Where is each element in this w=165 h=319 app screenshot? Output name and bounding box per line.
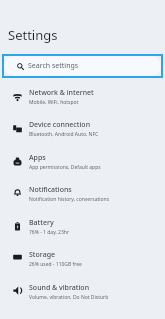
staticText: Battery	[29, 218, 54, 228]
button[interactable]: Sound & vibration	[0, 276, 165, 308]
staticText: Mobile, WiFi, hotspot	[29, 99, 79, 106]
staticText: Device connection	[29, 120, 91, 130]
button[interactable]: Network & internet	[0, 81, 165, 113]
button[interactable]: Notifications	[0, 178, 165, 210]
staticText: Volume, vibration, Do Not Disturb	[29, 294, 109, 301]
staticText: Bluetooth, Android Auto, NFC	[29, 131, 99, 138]
staticText: App permissions, Default apps	[29, 164, 101, 171]
button[interactable]: Battery	[0, 211, 165, 243]
button[interactable]: Device connection	[0, 113, 165, 145]
button[interactable]: Search settings	[4, 56, 161, 76]
staticText: 76% - 1 day, 23hr	[29, 229, 69, 236]
staticText: Sound & vibration	[29, 283, 90, 293]
staticText: Storage	[29, 250, 55, 260]
staticText: Notification history, conversations	[29, 196, 110, 203]
staticText: Search settings	[28, 61, 79, 71]
staticText: 26% used - 110GB free	[29, 261, 82, 268]
staticText: Notifications	[29, 185, 72, 195]
staticText: Settings	[8, 26, 58, 44]
staticText: Apps	[29, 153, 46, 163]
button[interactable]: Apps	[0, 146, 165, 178]
button[interactable]: Storage	[0, 243, 165, 275]
staticText: Network & internet	[29, 88, 94, 98]
